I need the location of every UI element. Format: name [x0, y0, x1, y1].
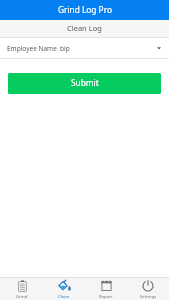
- staticText: Grind: [16, 293, 28, 299]
- button[interactable]: Report: [85, 278, 127, 300]
- staticText: Settings: [140, 293, 157, 299]
- staticText: Employee Name: [7, 44, 57, 53]
- button[interactable]: Grind: [0, 278, 43, 300]
- button[interactable]: Settings: [127, 278, 169, 300]
- staticText: Report: [99, 293, 113, 299]
- staticText: Clean: [58, 293, 70, 299]
- staticText: Grind Log Pro: [58, 4, 112, 15]
- button[interactable]: Employee Name: [0, 38, 169, 58]
- button[interactable]: Submit: [8, 73, 161, 94]
- button[interactable]: Clean: [43, 278, 85, 300]
- staticText: bip: [60, 44, 70, 53]
- staticText: Clean Log: [67, 23, 102, 33]
- staticText: Submit: [71, 77, 99, 88]
